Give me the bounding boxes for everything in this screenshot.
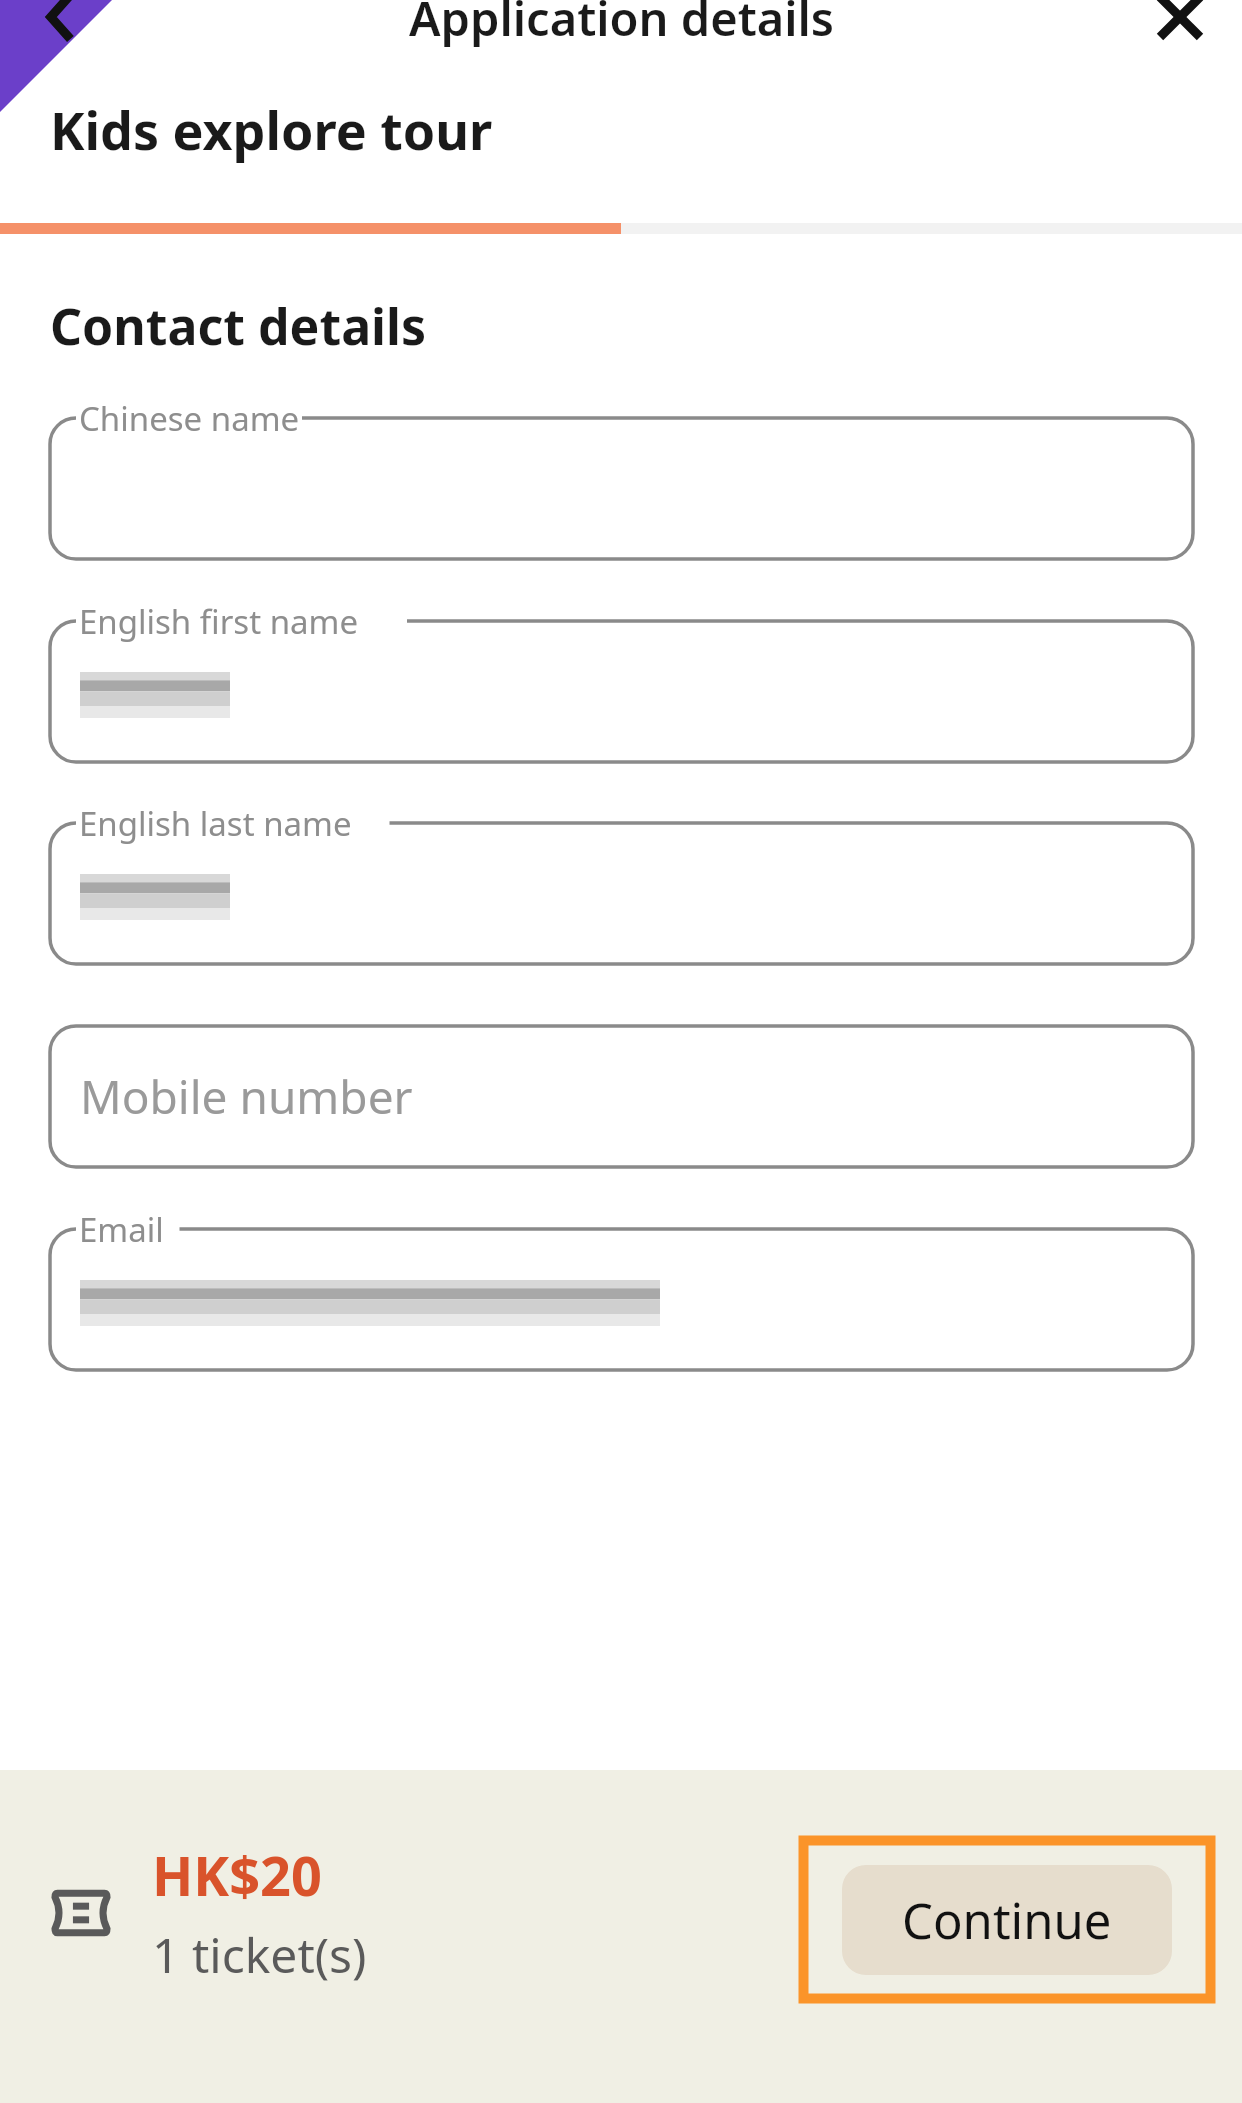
button[interactable]: Chinese name <box>50 404 1193 559</box>
staticText: Chinese name <box>79 396 300 441</box>
button[interactable]: Continue <box>801 1838 1213 2001</box>
button[interactable]: Mobile number <box>50 1012 1193 1167</box>
staticText: 1 ticket(s) <box>152 1922 367 1987</box>
button[interactable]: English last name <box>50 809 1193 964</box>
staticText: Kids explore tour <box>50 94 493 165</box>
button[interactable]: English first name <box>50 607 1193 762</box>
staticText: Continue <box>902 1887 1112 1954</box>
staticText: English first name <box>79 599 359 644</box>
staticText: Application details <box>409 0 834 48</box>
staticText: Contact details <box>50 292 427 360</box>
button[interactable]: Close <box>1140 0 1220 62</box>
staticText: English last name <box>79 801 352 846</box>
button[interactable]: Email <box>50 1215 1193 1370</box>
button[interactable]: Back <box>22 0 102 62</box>
staticText: HK$20 <box>152 1838 322 1912</box>
staticText: Email <box>79 1207 164 1252</box>
staticText: Mobile number <box>80 1065 413 1128</box>
